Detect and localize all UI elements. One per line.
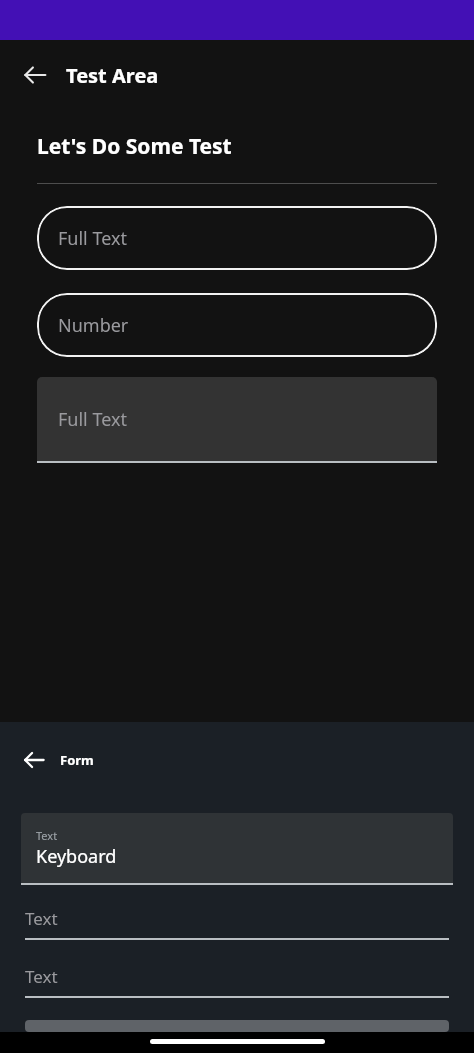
button[interactable]: Full Text: [37, 206, 437, 270]
staticText: Form: [60, 751, 94, 769]
staticText: Full Text: [58, 226, 127, 251]
button[interactable]: Number: [37, 293, 437, 357]
staticText: Text: [36, 828, 58, 843]
button[interactable]: Full Text: [37, 377, 437, 463]
staticText: Test Area: [66, 62, 159, 89]
button[interactable]: Back: [12, 52, 58, 98]
button[interactable]: Back: [14, 740, 54, 780]
button[interactable]: Text: [25, 956, 449, 998]
button[interactable]: Text: [25, 898, 449, 940]
button[interactable]: Text: [21, 813, 453, 885]
staticText: Full Text: [58, 407, 127, 432]
staticText: Text: [25, 965, 58, 988]
staticText: Let's Do Some Test: [37, 132, 232, 161]
staticText: Text: [25, 907, 58, 930]
staticText: Keyboard: [36, 844, 117, 869]
staticText: Number: [58, 313, 129, 338]
